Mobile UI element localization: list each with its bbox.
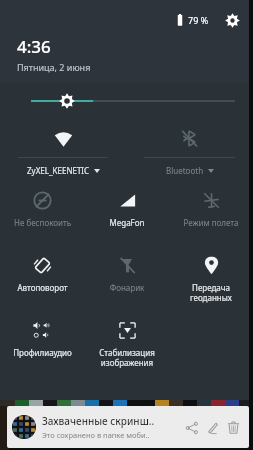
button[interactable]: Стабилизация изображения	[85, 312, 169, 368]
button[interactable]: Settings	[221, 9, 243, 31]
button[interactable]: Автоповорот	[0, 247, 85, 293]
staticText: Режим полета	[171, 217, 251, 228]
staticText: Захваченные скринш..	[42, 414, 155, 428]
staticText: 4:36	[17, 35, 51, 58]
button[interactable]: Не беспокоить	[0, 182, 85, 228]
button[interactable]: Share	[181, 417, 202, 438]
button[interactable]: Delete	[223, 417, 244, 438]
button[interactable]: Режим полета	[169, 182, 253, 228]
button[interactable]: Bluetooth	[126, 118, 253, 182]
staticText: Это сохранено в папке моби..	[42, 430, 150, 440]
staticText: Не беспокоить	[2, 217, 83, 228]
staticText: Фонарик	[87, 282, 167, 293]
staticText: ZyXEL_KEENETIC	[27, 165, 90, 176]
staticText: Стабилизация изображения	[87, 347, 167, 368]
button[interactable]: Edit	[202, 417, 223, 438]
staticText: Автоповорот	[2, 282, 83, 293]
staticText: Профилиаудио	[2, 347, 83, 358]
staticText: Передача геоданных	[171, 282, 251, 303]
staticText: 79 %	[188, 14, 209, 26]
button[interactable]: Фонарик	[85, 247, 169, 293]
button[interactable]: Профилиаудио	[0, 312, 85, 358]
staticText: Пятница, 2 июня	[17, 61, 91, 73]
staticText: MegaFon	[87, 217, 167, 228]
button[interactable]: Brightness	[0, 83, 253, 118]
button[interactable]: MegaFon	[85, 182, 169, 228]
button[interactable]: Захваченные скринш..	[7, 406, 249, 448]
button[interactable]: ZyXEL_KEENETIC	[0, 118, 126, 182]
staticText: Bluetooth	[166, 165, 204, 176]
button[interactable]: Передача геоданных	[169, 247, 253, 303]
